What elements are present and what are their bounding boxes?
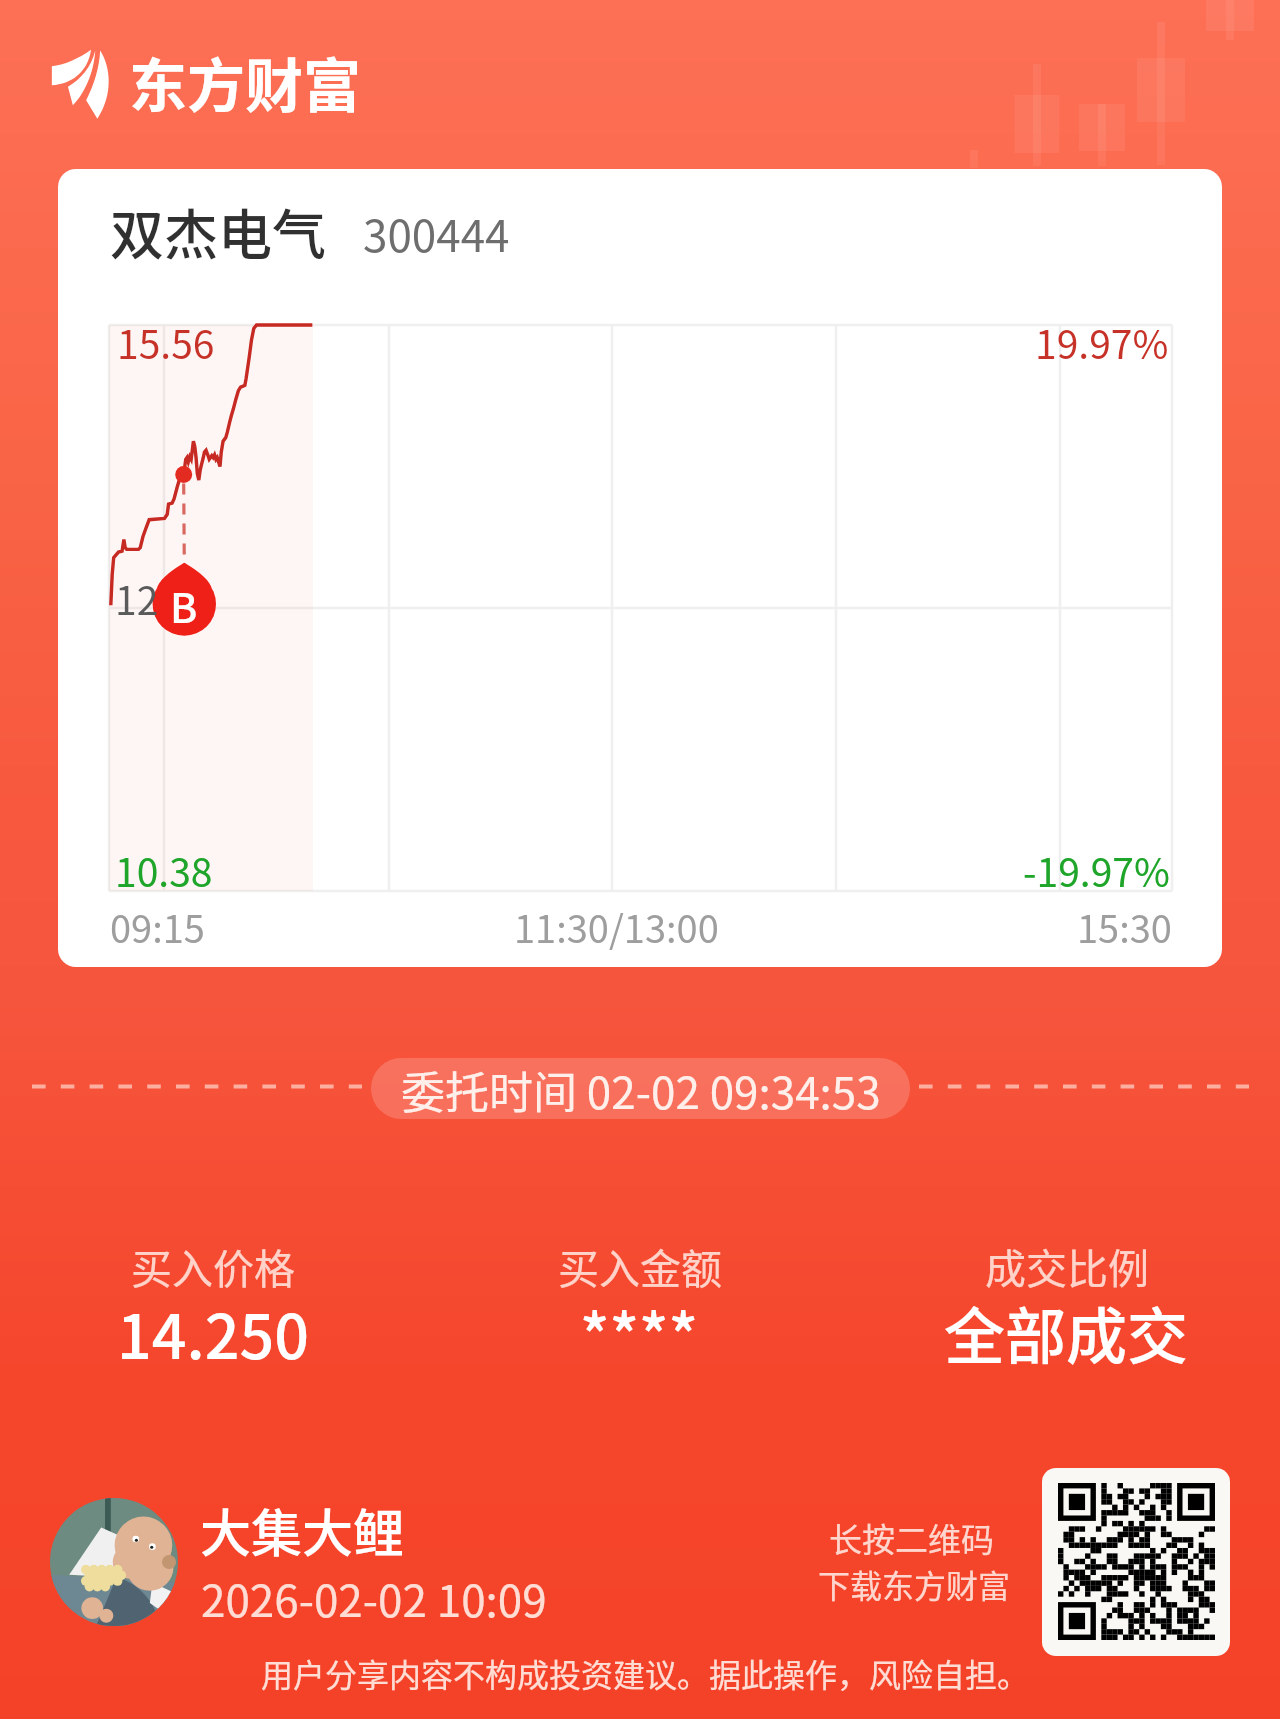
staticText: 委托时间 02-02 09:34:53 xyxy=(401,1058,881,1119)
staticText: 09:15 xyxy=(110,899,205,954)
staticText: 15:30 xyxy=(1077,899,1172,954)
staticText: 长按二维码 xyxy=(829,1514,994,1562)
staticText: 全部成交 xyxy=(944,1288,1189,1376)
staticText: 300444 xyxy=(363,201,510,265)
staticText: **** xyxy=(580,1288,699,1376)
staticText: 15.56 xyxy=(117,314,215,370)
staticText: 19.97% xyxy=(1035,314,1169,370)
staticText: 11:30/13:00 xyxy=(514,899,719,954)
button[interactable]: 买入金额 xyxy=(426,1236,853,1295)
staticText: 东方财富 xyxy=(129,40,362,124)
button[interactable]: 成交比例 xyxy=(853,1236,1280,1295)
button[interactable]: 双杰电气 xyxy=(58,169,1222,967)
staticText: B xyxy=(170,575,198,634)
staticText: 用户分享内容不构成投资建议。据此操作，风险自担。 xyxy=(5,1650,1280,1696)
staticText: 10.38 xyxy=(115,842,213,898)
button[interactable]: 委托时间 02-02 09:34:53 xyxy=(371,1058,910,1119)
button[interactable]: Download QR code xyxy=(1042,1468,1230,1656)
staticText: 买入价格 xyxy=(131,1236,295,1295)
staticText: 12 xyxy=(115,570,159,626)
staticText: 2026-02-02 10:09 xyxy=(201,1566,547,1630)
staticText: 14.250 xyxy=(117,1288,310,1376)
staticText: 下载东方财富 xyxy=(818,1561,1011,1607)
staticText: 双杰电气 xyxy=(110,192,326,270)
staticText: -19.97% xyxy=(1023,842,1170,898)
staticText: 大集大鲤 xyxy=(200,1493,405,1567)
button[interactable]: 买入价格 xyxy=(0,1236,426,1295)
staticText: 买入金额 xyxy=(558,1236,722,1295)
staticText: 成交比例 xyxy=(985,1236,1149,1295)
